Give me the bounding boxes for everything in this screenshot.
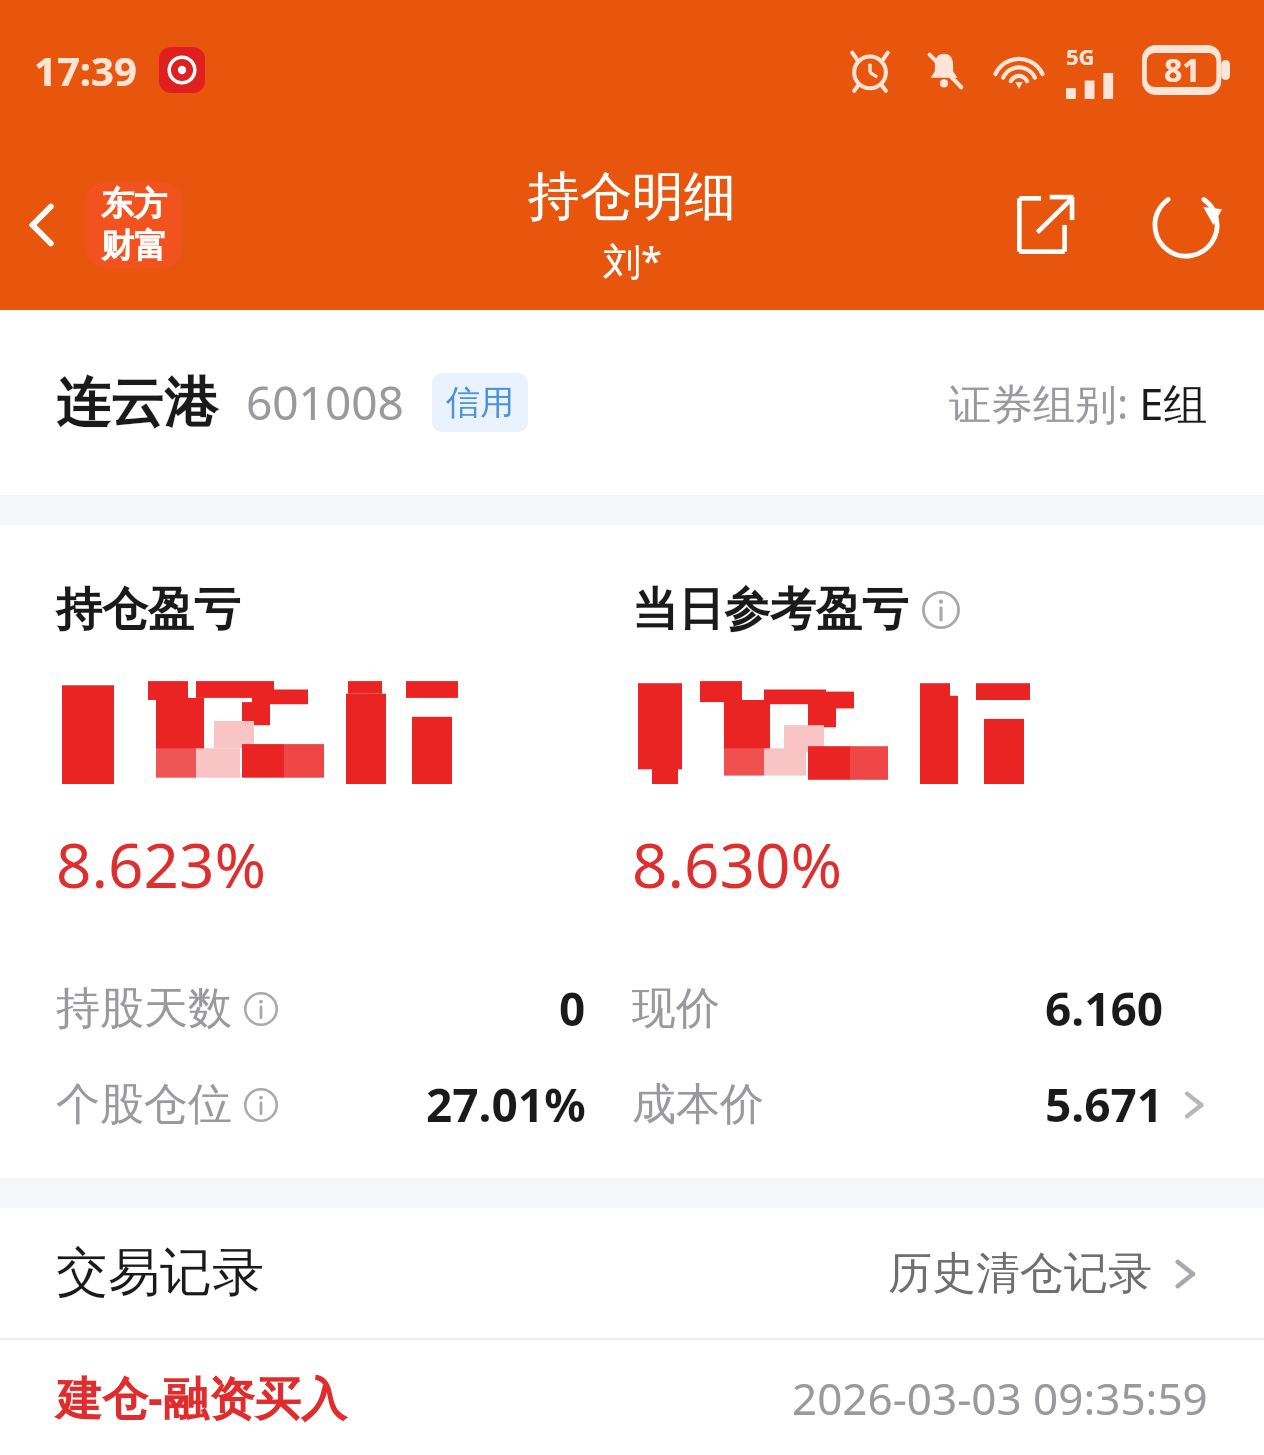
staticText: 东方 (101, 183, 167, 225)
button[interactable]: 东方财富 (86, 182, 182, 268)
staticText: 连云港 (56, 369, 218, 437)
button[interactable]: 持股天数 (0, 960, 1264, 1056)
button[interactable]: Refresh (1136, 175, 1236, 275)
staticText: 27.01% (426, 1073, 586, 1136)
staticText: 持仓盈亏 (56, 581, 240, 639)
staticText: 现价 (632, 981, 720, 1036)
staticText: 5G (1066, 41, 1095, 71)
staticText: E组 (1139, 373, 1208, 433)
staticText: 当日参考盈亏 (632, 581, 908, 639)
staticText: 成本价 (632, 1077, 764, 1132)
staticText: 交易记录 (56, 1240, 264, 1306)
staticText: 0 (559, 977, 586, 1040)
staticText: 持股天数 (56, 981, 232, 1036)
staticText: 2026-03-03 09:35:59 (792, 1368, 1208, 1428)
staticText: 17:39 (34, 43, 137, 97)
staticText: 8.630% (632, 822, 842, 906)
staticText: 持仓明细 (528, 164, 736, 230)
staticText: 6.160 (1045, 977, 1164, 1040)
staticText: 信用 (446, 381, 514, 424)
button[interactable]: 历史清仓记录 (880, 1238, 1208, 1309)
staticText: 证券组别: (949, 374, 1129, 431)
staticText: 601008 (246, 371, 404, 434)
staticText: 8.623% (56, 822, 266, 906)
staticText: 个股仓位 (56, 1077, 232, 1132)
button[interactable]: Back (0, 182, 86, 268)
staticText: 5.671 (1045, 1073, 1164, 1136)
staticText: 历史清仓记录 (888, 1246, 1152, 1301)
button[interactable]: Share (996, 175, 1096, 275)
button[interactable]: 建仓-融资买入 (0, 1340, 1264, 1455)
button[interactable]: 个股仓位 (0, 1056, 1264, 1152)
staticText: 81 (1164, 48, 1201, 92)
button[interactable]: 连云港 (0, 310, 1264, 495)
staticText: 刘* (603, 234, 662, 286)
staticText: 财富 (101, 225, 167, 267)
staticText: 建仓-融资买入 (56, 1366, 347, 1429)
